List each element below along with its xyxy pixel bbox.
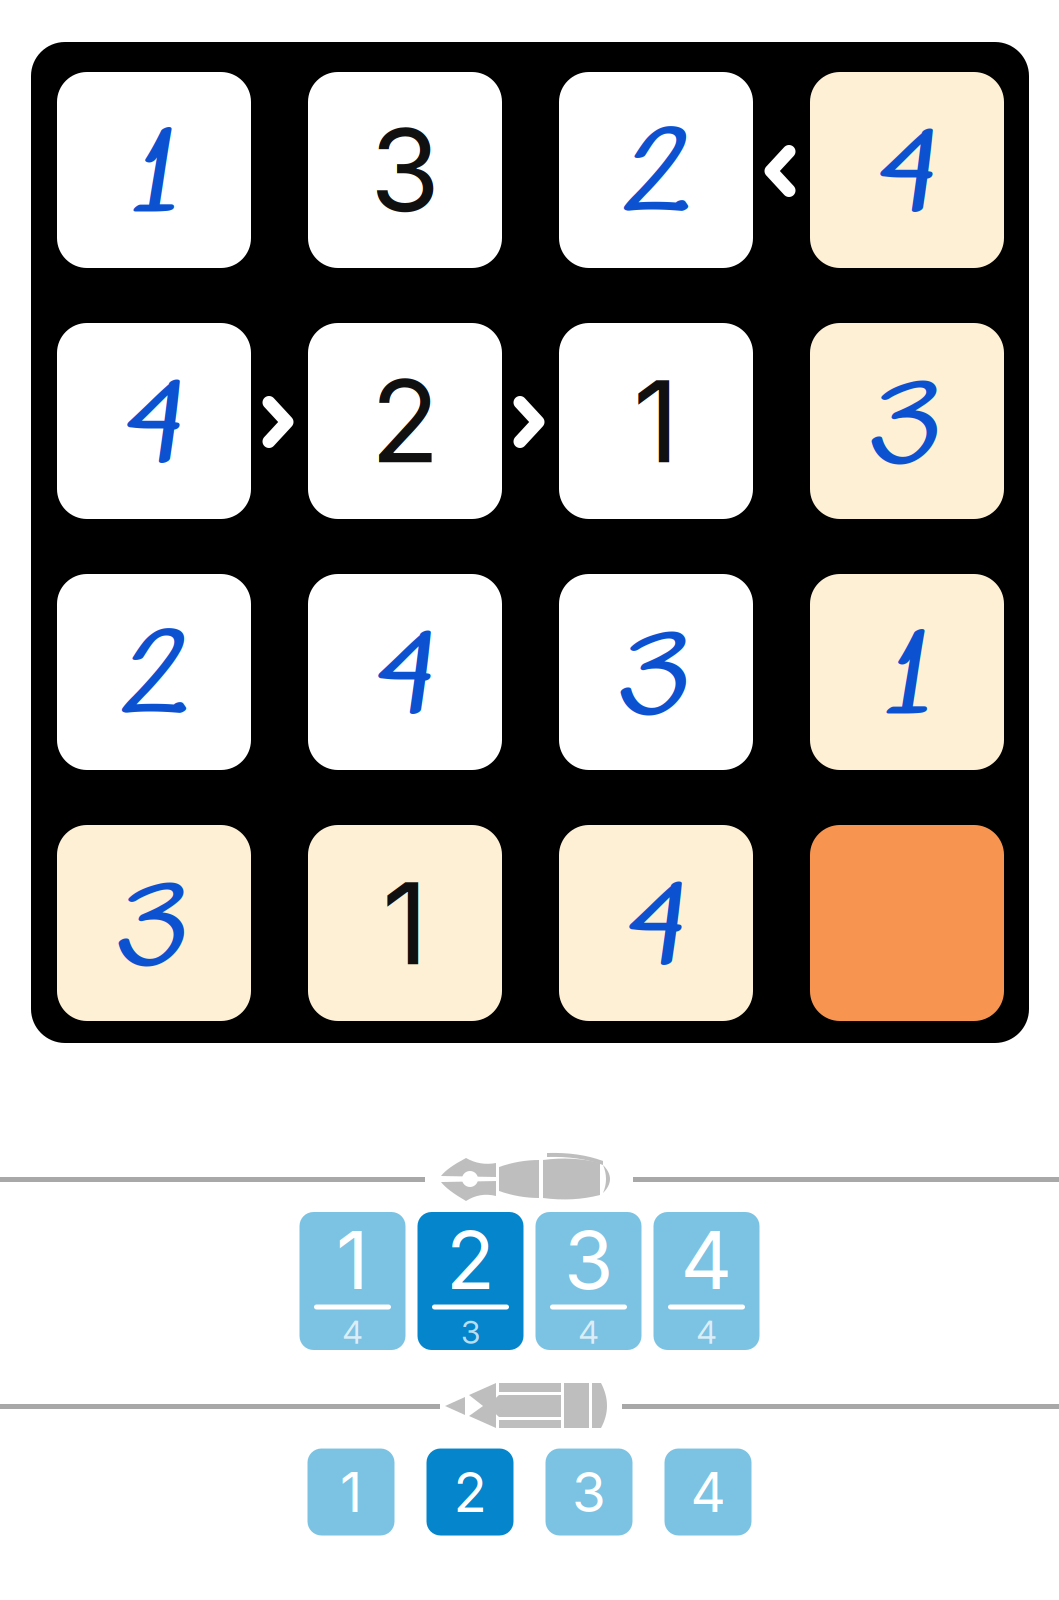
staticText: 2: [453, 1459, 486, 1525]
button[interactable]: 4: [559, 825, 753, 1021]
staticText: 1: [382, 854, 428, 991]
button[interactable]: 1: [810, 574, 1004, 770]
button[interactable]: 4: [810, 72, 1004, 268]
button[interactable]: 2: [57, 574, 251, 770]
staticText: 1: [633, 352, 679, 489]
button[interactable]: 3: [535, 1212, 641, 1350]
button[interactable]: 3: [308, 72, 502, 268]
staticText: 1: [336, 1212, 369, 1308]
button[interactable]: 3: [810, 323, 1004, 519]
staticText: 3: [564, 1212, 613, 1308]
staticText: 4: [578, 1313, 598, 1351]
button[interactable]: 2: [559, 72, 753, 268]
staticText: 4: [376, 616, 434, 746]
staticText: 4: [696, 1313, 716, 1351]
staticText: 1: [884, 616, 930, 746]
staticText: 2: [446, 1212, 495, 1308]
staticText: 4: [690, 1459, 725, 1525]
button[interactable]: 2: [308, 323, 502, 519]
staticText: 2: [370, 352, 439, 489]
staticText: 3: [572, 1459, 606, 1525]
staticText: 1: [340, 1459, 362, 1525]
button[interactable]: 4: [308, 574, 502, 770]
staticText: 3: [370, 101, 440, 238]
button[interactable]: [810, 825, 1004, 1021]
staticText: 3: [461, 1313, 480, 1351]
button[interactable]: 3: [57, 825, 251, 1021]
button[interactable]: 2: [426, 1448, 513, 1535]
staticText: 3: [625, 616, 687, 746]
button[interactable]: 1: [57, 72, 251, 268]
staticText: 1: [131, 114, 177, 244]
staticText: 2: [120, 616, 188, 746]
button[interactable]: 1: [559, 323, 753, 519]
button[interactable]: 1: [307, 1448, 394, 1535]
staticText: 4: [627, 867, 685, 997]
button[interactable]: 4: [57, 323, 251, 519]
staticText: 4: [878, 114, 936, 244]
button[interactable]: 1: [299, 1212, 405, 1350]
staticText: 4: [125, 365, 183, 495]
staticText: 4: [680, 1212, 732, 1308]
staticText: 4: [342, 1313, 362, 1351]
button[interactable]: 3: [559, 574, 753, 770]
button[interactable]: 4: [664, 1448, 751, 1535]
staticText: 3: [876, 365, 938, 495]
button[interactable]: 3: [545, 1448, 632, 1535]
staticText: 3: [123, 867, 185, 997]
button[interactable]: 2: [417, 1212, 523, 1350]
button[interactable]: 4: [653, 1212, 759, 1350]
button[interactable]: 1: [308, 825, 502, 1021]
staticText: 2: [622, 114, 690, 244]
